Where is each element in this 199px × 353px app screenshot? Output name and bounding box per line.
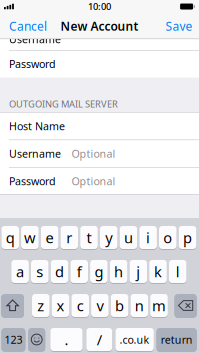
staticText: p	[183, 228, 192, 247]
staticText: .	[64, 330, 68, 349]
staticText: q	[6, 228, 15, 247]
button[interactable]: t	[80, 226, 98, 249]
button[interactable]: Shift	[1, 294, 24, 317]
staticText: Password	[9, 174, 56, 188]
staticText: s	[36, 262, 43, 281]
staticText: v	[96, 296, 103, 315]
button[interactable]: Delete	[174, 294, 197, 317]
staticText: a	[16, 262, 24, 281]
staticText: New Account	[60, 18, 138, 34]
staticText: f	[77, 262, 82, 281]
button[interactable]: return	[156, 328, 197, 351]
button[interactable]: .	[50, 328, 83, 351]
staticText: w	[24, 228, 36, 247]
button[interactable]: j	[129, 260, 147, 283]
staticText: t	[86, 228, 91, 247]
staticText: 10:00	[88, 0, 111, 13]
button[interactable]: .co.uk	[115, 328, 154, 351]
button[interactable]: z	[32, 294, 50, 317]
button[interactable]: h	[110, 260, 127, 283]
button[interactable]: g	[90, 260, 108, 283]
staticText: e	[46, 228, 54, 247]
staticText: Username	[9, 146, 61, 161]
button[interactable]: s	[31, 260, 49, 283]
staticText: b	[115, 296, 124, 315]
button[interactable]: m	[150, 294, 168, 317]
staticText: z	[37, 296, 44, 315]
staticText: /	[97, 330, 102, 349]
staticText: h	[114, 262, 123, 281]
button[interactable]: q	[1, 226, 19, 249]
staticText: u	[124, 228, 133, 247]
staticText: Password	[9, 57, 56, 71]
button[interactable]: b	[111, 294, 128, 317]
button[interactable]: Host Name	[0, 112, 199, 139]
button[interactable]: /	[86, 328, 112, 351]
staticText: return	[161, 332, 193, 347]
staticText: d	[55, 262, 64, 281]
button[interactable]: Emoji	[28, 328, 45, 351]
button[interactable]: Password	[0, 50, 199, 77]
staticText: r	[66, 228, 72, 247]
button[interactable]: n	[130, 294, 148, 317]
staticText: n	[135, 296, 144, 315]
button[interactable]: Cancel	[2, 13, 50, 39]
staticText: Optional	[71, 146, 115, 161]
staticText: Cancel	[9, 18, 47, 34]
staticText: OUTGOING MAIL SERVER	[9, 98, 118, 110]
button[interactable]: k	[149, 260, 167, 283]
staticText: j	[136, 262, 140, 281]
staticText: Host Name	[9, 119, 65, 133]
button[interactable]: d	[51, 260, 68, 283]
staticText: m	[152, 296, 166, 315]
button[interactable]: l	[169, 260, 186, 283]
staticText: x	[56, 296, 64, 315]
button[interactable]: y	[100, 226, 117, 249]
button[interactable]: Password	[0, 167, 199, 194]
button[interactable]: Save	[151, 13, 197, 39]
staticText: Optional	[71, 174, 115, 188]
button[interactable]: x	[52, 294, 69, 317]
button[interactable]: o	[159, 226, 177, 249]
staticText: .co.uk	[120, 332, 150, 347]
button[interactable]: c	[71, 294, 89, 317]
button[interactable]: e	[41, 226, 58, 249]
staticText: Save	[165, 18, 192, 34]
staticText: k	[154, 262, 162, 281]
button[interactable]: v	[91, 294, 109, 317]
button[interactable]: f	[70, 260, 88, 283]
staticText: o	[163, 228, 172, 247]
staticText: g	[94, 262, 103, 281]
button[interactable]: u	[120, 226, 137, 249]
button[interactable]: 123	[1, 328, 25, 351]
staticText: Username	[9, 32, 61, 46]
button[interactable]: i	[139, 226, 157, 249]
staticText: 123	[4, 332, 22, 347]
staticText: y	[105, 228, 112, 247]
staticText: c	[77, 296, 84, 315]
button[interactable]: Username	[0, 140, 199, 167]
button[interactable]: r	[60, 226, 78, 249]
button[interactable]: a	[11, 260, 29, 283]
button[interactable]: p	[179, 226, 196, 249]
button[interactable]: w	[21, 226, 39, 249]
staticText: l	[176, 262, 180, 281]
staticText: i	[146, 228, 150, 247]
